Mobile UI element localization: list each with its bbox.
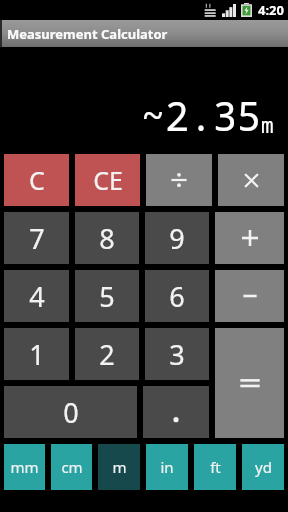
staticText: 8 bbox=[99, 220, 115, 257]
button[interactable]: Equals bbox=[215, 328, 284, 438]
button[interactable]: mm bbox=[4, 444, 45, 490]
button[interactable]: yd bbox=[242, 444, 284, 490]
staticText: 3 bbox=[169, 336, 185, 373]
staticText: 5 bbox=[99, 278, 115, 315]
button[interactable]: Minus bbox=[215, 270, 284, 322]
staticText: ft bbox=[210, 457, 221, 477]
staticText: 1 bbox=[29, 336, 45, 373]
button[interactable]: 6 bbox=[145, 270, 209, 322]
staticText: 4:20 bbox=[258, 1, 284, 19]
staticText: 6 bbox=[169, 278, 185, 315]
button[interactable]: 2 bbox=[75, 328, 139, 380]
staticText: 7 bbox=[29, 220, 45, 257]
button[interactable]: ft bbox=[194, 444, 236, 490]
button[interactable]: Multiply bbox=[218, 154, 284, 206]
staticText: cm bbox=[61, 457, 83, 477]
button[interactable]: 3 bbox=[145, 328, 209, 380]
button[interactable]: Plus bbox=[215, 212, 284, 264]
button[interactable]: 8 bbox=[75, 212, 139, 264]
button[interactable]: 5 bbox=[75, 270, 139, 322]
staticText: 0 bbox=[63, 394, 79, 431]
button[interactable]: 9 bbox=[145, 212, 209, 264]
button[interactable]: 1 bbox=[4, 328, 69, 380]
staticText: m bbox=[261, 111, 274, 140]
button[interactable]: 4 bbox=[4, 270, 69, 322]
staticText: ~2.35 bbox=[141, 88, 261, 142]
staticText: mm bbox=[10, 457, 39, 477]
staticText: yd bbox=[255, 457, 272, 477]
button[interactable]: Divide bbox=[146, 154, 212, 206]
button[interactable]: m bbox=[98, 444, 140, 490]
staticText: 9 bbox=[169, 220, 185, 257]
staticText: 4 bbox=[29, 278, 45, 315]
button[interactable]: C bbox=[4, 154, 69, 206]
staticText: 2 bbox=[99, 336, 115, 373]
staticText: Measurement Calculator bbox=[7, 25, 168, 43]
staticText: m bbox=[112, 457, 127, 477]
button[interactable]: in bbox=[146, 444, 188, 490]
button[interactable]: 7 bbox=[4, 212, 69, 264]
staticText: CE bbox=[93, 163, 123, 197]
staticText: C bbox=[29, 163, 45, 197]
button[interactable]: CE bbox=[75, 154, 140, 206]
staticText: in bbox=[160, 457, 174, 477]
button[interactable]: cm bbox=[51, 444, 92, 490]
button[interactable]: Decimal point bbox=[143, 386, 209, 438]
button[interactable]: 0 bbox=[4, 386, 137, 438]
